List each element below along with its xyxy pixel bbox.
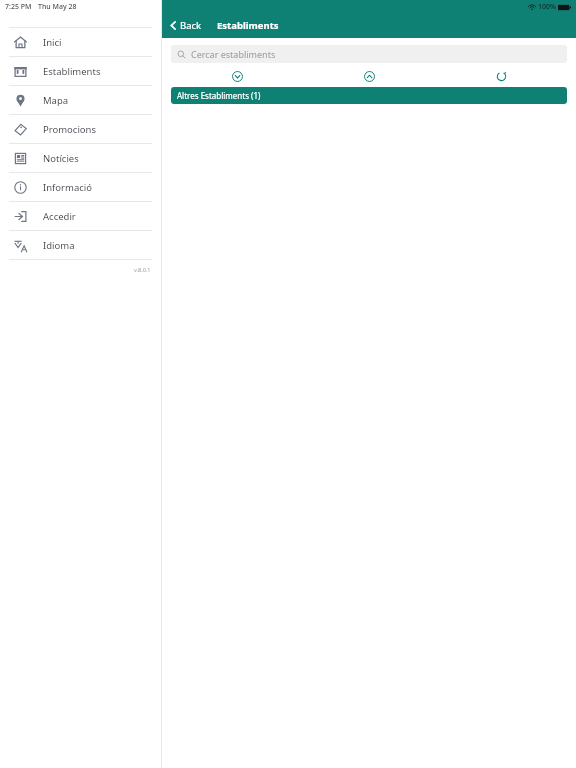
staticText: Thu May 28 — [38, 2, 77, 12]
staticText: 100% — [538, 2, 556, 12]
button[interactable]: Refresh — [435, 68, 567, 85]
staticText: Idioma — [43, 239, 75, 252]
button[interactable]: Mapa — [0, 86, 161, 115]
staticText: Notícies — [43, 152, 79, 165]
staticText: Altres Establiments (1) — [177, 90, 261, 101]
staticText: Establiments — [43, 65, 101, 78]
staticText: Promocions — [43, 123, 97, 136]
button[interactable]: Accedir — [0, 202, 161, 231]
button[interactable]: Notícies — [0, 144, 161, 173]
staticText: Mapa — [43, 94, 69, 107]
button[interactable]: Back — [169, 13, 202, 38]
button[interactable]: Cercar establiments — [171, 45, 567, 63]
button[interactable]: Informació — [0, 173, 161, 202]
button[interactable]: Altres Establiments (1) — [171, 87, 567, 104]
staticText: Cercar establiments — [191, 48, 276, 60]
staticText: Accedir — [43, 210, 76, 223]
button[interactable]: Establiments — [0, 57, 161, 86]
button[interactable]: Expand all — [171, 68, 303, 85]
staticText: Inici — [43, 36, 62, 49]
staticText: 7:25 PM — [5, 2, 32, 12]
button[interactable]: Idioma — [0, 231, 161, 260]
staticText: Informació — [43, 181, 93, 194]
staticText: Back — [180, 19, 202, 32]
button[interactable]: Inici — [0, 28, 161, 57]
staticText: Establiments — [217, 19, 279, 32]
staticText: v.8.0.1 — [134, 266, 151, 273]
button[interactable]: Promocions — [0, 115, 161, 144]
button[interactable]: Collapse all — [303, 68, 435, 85]
